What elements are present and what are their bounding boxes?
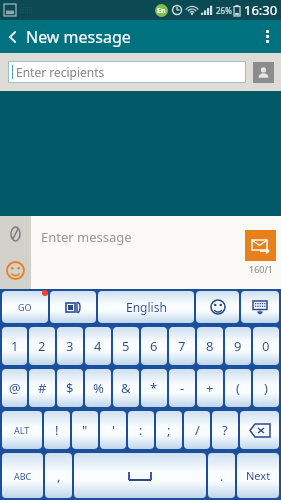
staticText: English (126, 299, 167, 315)
button[interactable]: More options (253, 20, 281, 53)
button[interactable]: - (169, 369, 195, 407)
staticText: " (82, 421, 88, 439)
button[interactable]: , (45, 453, 72, 498)
staticText: $ (66, 379, 74, 397)
button[interactable]: Back (0, 20, 26, 53)
button[interactable]: ALT (2, 411, 42, 449)
button[interactable]: ! (44, 411, 70, 449)
staticText: New message (26, 26, 131, 48)
staticText: 8 (206, 337, 214, 355)
button[interactable]: : (128, 411, 154, 449)
button[interactable]: 1 (2, 327, 27, 365)
staticText: ABC (14, 470, 32, 482)
staticText: + (206, 379, 214, 397)
button[interactable]: Attach (0, 216, 31, 252)
staticText: 1 (11, 337, 19, 355)
button[interactable]: Emoji (196, 291, 239, 323)
button[interactable]: Space (74, 453, 206, 498)
button[interactable]: + (197, 369, 223, 407)
staticText: 3 (66, 337, 74, 355)
staticText: 26% (216, 5, 232, 16)
staticText: ALT (14, 424, 30, 436)
staticText: 0 (262, 337, 270, 355)
staticText: En (157, 6, 166, 16)
staticText: ? (222, 421, 228, 439)
staticText: / (195, 421, 200, 439)
button[interactable]: Send (245, 230, 276, 261)
staticText: 2 (38, 337, 46, 355)
button[interactable]: Enter recipients (8, 61, 246, 83)
button[interactable]: $ (57, 369, 83, 407)
staticText: - (180, 379, 185, 397)
button[interactable]: Emoji (0, 252, 31, 289)
staticText: ; (167, 421, 171, 439)
button[interactable]: 2 (29, 327, 55, 365)
staticText: 6 (150, 337, 158, 355)
button[interactable]: Add recipient (253, 62, 274, 83)
button[interactable]: ABC (2, 453, 43, 498)
button[interactable]: @ (2, 369, 27, 407)
button[interactable]: Enter message (31, 216, 281, 289)
button[interactable]: 4 (85, 327, 111, 365)
button[interactable]: GO (2, 291, 48, 323)
button[interactable]: & (113, 369, 139, 407)
staticText: ' (112, 421, 115, 439)
staticText: : (139, 421, 143, 439)
staticText: GO (18, 301, 32, 313)
staticText: # (38, 379, 47, 397)
staticText: 7 (178, 337, 186, 355)
staticText: ( (236, 379, 240, 397)
button[interactable]: ? (212, 411, 238, 449)
button[interactable]: . (208, 453, 235, 498)
staticText: @ (9, 379, 21, 397)
button[interactable]: Backspace (240, 411, 279, 449)
staticText: % (93, 379, 104, 397)
button[interactable]: 5 (113, 327, 139, 365)
button[interactable]: / (184, 411, 210, 449)
staticText: 5 (122, 337, 130, 355)
button[interactable]: 0 (253, 327, 279, 365)
staticText: Next (246, 468, 271, 483)
button[interactable]: 8 (197, 327, 223, 365)
staticText: * (150, 379, 158, 397)
button[interactable]: English (98, 291, 194, 323)
staticText: ) (264, 379, 268, 397)
staticText: 16:30 (244, 1, 278, 19)
button[interactable]: Hide keyboard (241, 291, 279, 323)
button[interactable]: 3 (57, 327, 83, 365)
button[interactable]: ; (156, 411, 182, 449)
button[interactable]: 6 (141, 327, 167, 365)
button[interactable]: 7 (169, 327, 195, 365)
button[interactable]: 9 (225, 327, 251, 365)
button[interactable]: * (141, 369, 167, 407)
button[interactable]: Input mode (50, 291, 96, 323)
staticText: 4 (94, 337, 102, 355)
staticText: . (220, 467, 224, 485)
button[interactable]: # (29, 369, 55, 407)
staticText: Enter recipients (16, 64, 105, 80)
staticText: Enter message (41, 228, 132, 246)
button[interactable]: ) (253, 369, 279, 407)
staticText: 9 (234, 337, 242, 355)
button[interactable]: " (72, 411, 98, 449)
button[interactable]: % (85, 369, 111, 407)
staticText: 160/1 (249, 263, 273, 275)
staticText: ! (55, 421, 59, 439)
staticText: , (57, 467, 61, 485)
button[interactable]: Next (237, 453, 279, 498)
button[interactable]: ' (100, 411, 126, 449)
button[interactable]: ( (225, 369, 251, 407)
staticText: & (121, 379, 131, 397)
